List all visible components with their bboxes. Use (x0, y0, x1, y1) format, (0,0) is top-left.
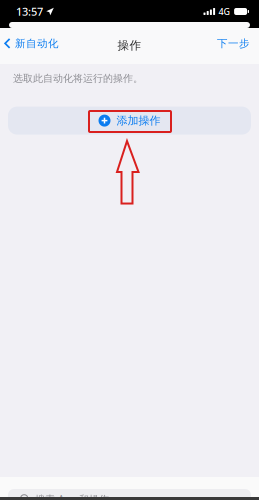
staticText: 新自动化 (15, 37, 59, 50)
button[interactable]: 添加操作 (8, 107, 251, 135)
staticText: 4G (219, 5, 231, 18)
staticText: 下一步 (217, 37, 250, 50)
staticText: 搜索 App 和操作 (35, 492, 109, 500)
button[interactable]: 下一步 (207, 27, 259, 60)
staticText: 选取此自动化将运行的操作。 (13, 72, 143, 85)
button[interactable]: 新自动化 (0, 27, 67, 60)
staticText: 13:57 (16, 4, 43, 19)
staticText: 添加操作 (116, 114, 160, 128)
staticText: 操作 (117, 38, 141, 53)
